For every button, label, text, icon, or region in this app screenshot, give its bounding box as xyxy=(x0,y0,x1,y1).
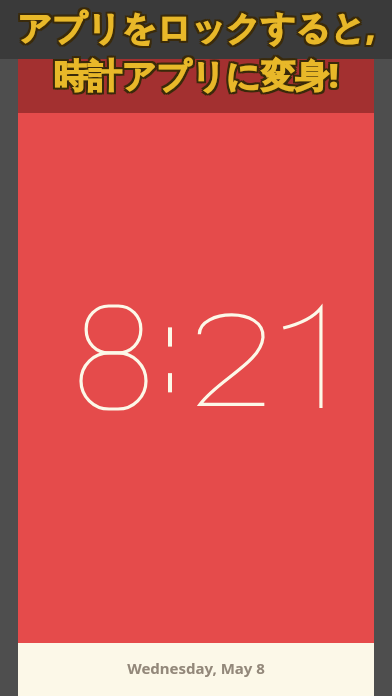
staticText: 時計アプリに変身! xyxy=(51,52,337,98)
staticText: 時計アプリに変身! xyxy=(53,54,339,100)
staticText: 時計アプリに変身! xyxy=(51,50,337,96)
staticText: Wednesday, May 8 xyxy=(127,658,265,678)
staticText: アプリをロックすると, xyxy=(17,2,376,48)
staticText: アプリをロックすると, xyxy=(19,2,378,48)
staticText: アプリをロックすると, xyxy=(19,4,378,50)
staticText: アプリをロックすると, xyxy=(17,6,376,52)
staticText: 時計アプリに変身! xyxy=(53,50,339,96)
staticText: アプリをロックすると, xyxy=(17,4,376,50)
staticText: アプリをロックすると, xyxy=(19,6,378,52)
staticText: アプリをロックすると, xyxy=(15,4,374,50)
button[interactable]: Clock showing 8:21 xyxy=(18,113,374,643)
staticText: 時計アプリに変身! xyxy=(51,54,337,100)
staticText: 時計アプリに変身! xyxy=(55,52,341,98)
button[interactable]: Wednesday, May 8 xyxy=(18,643,374,696)
staticText: 時計アプリに変身! xyxy=(55,54,341,100)
staticText: 時計アプリに変身! xyxy=(55,50,341,96)
staticText: 時計アプリに変身! xyxy=(53,52,339,98)
staticText: アプリをロックすると, xyxy=(15,2,374,48)
staticText: アプリをロックすると, xyxy=(15,6,374,52)
